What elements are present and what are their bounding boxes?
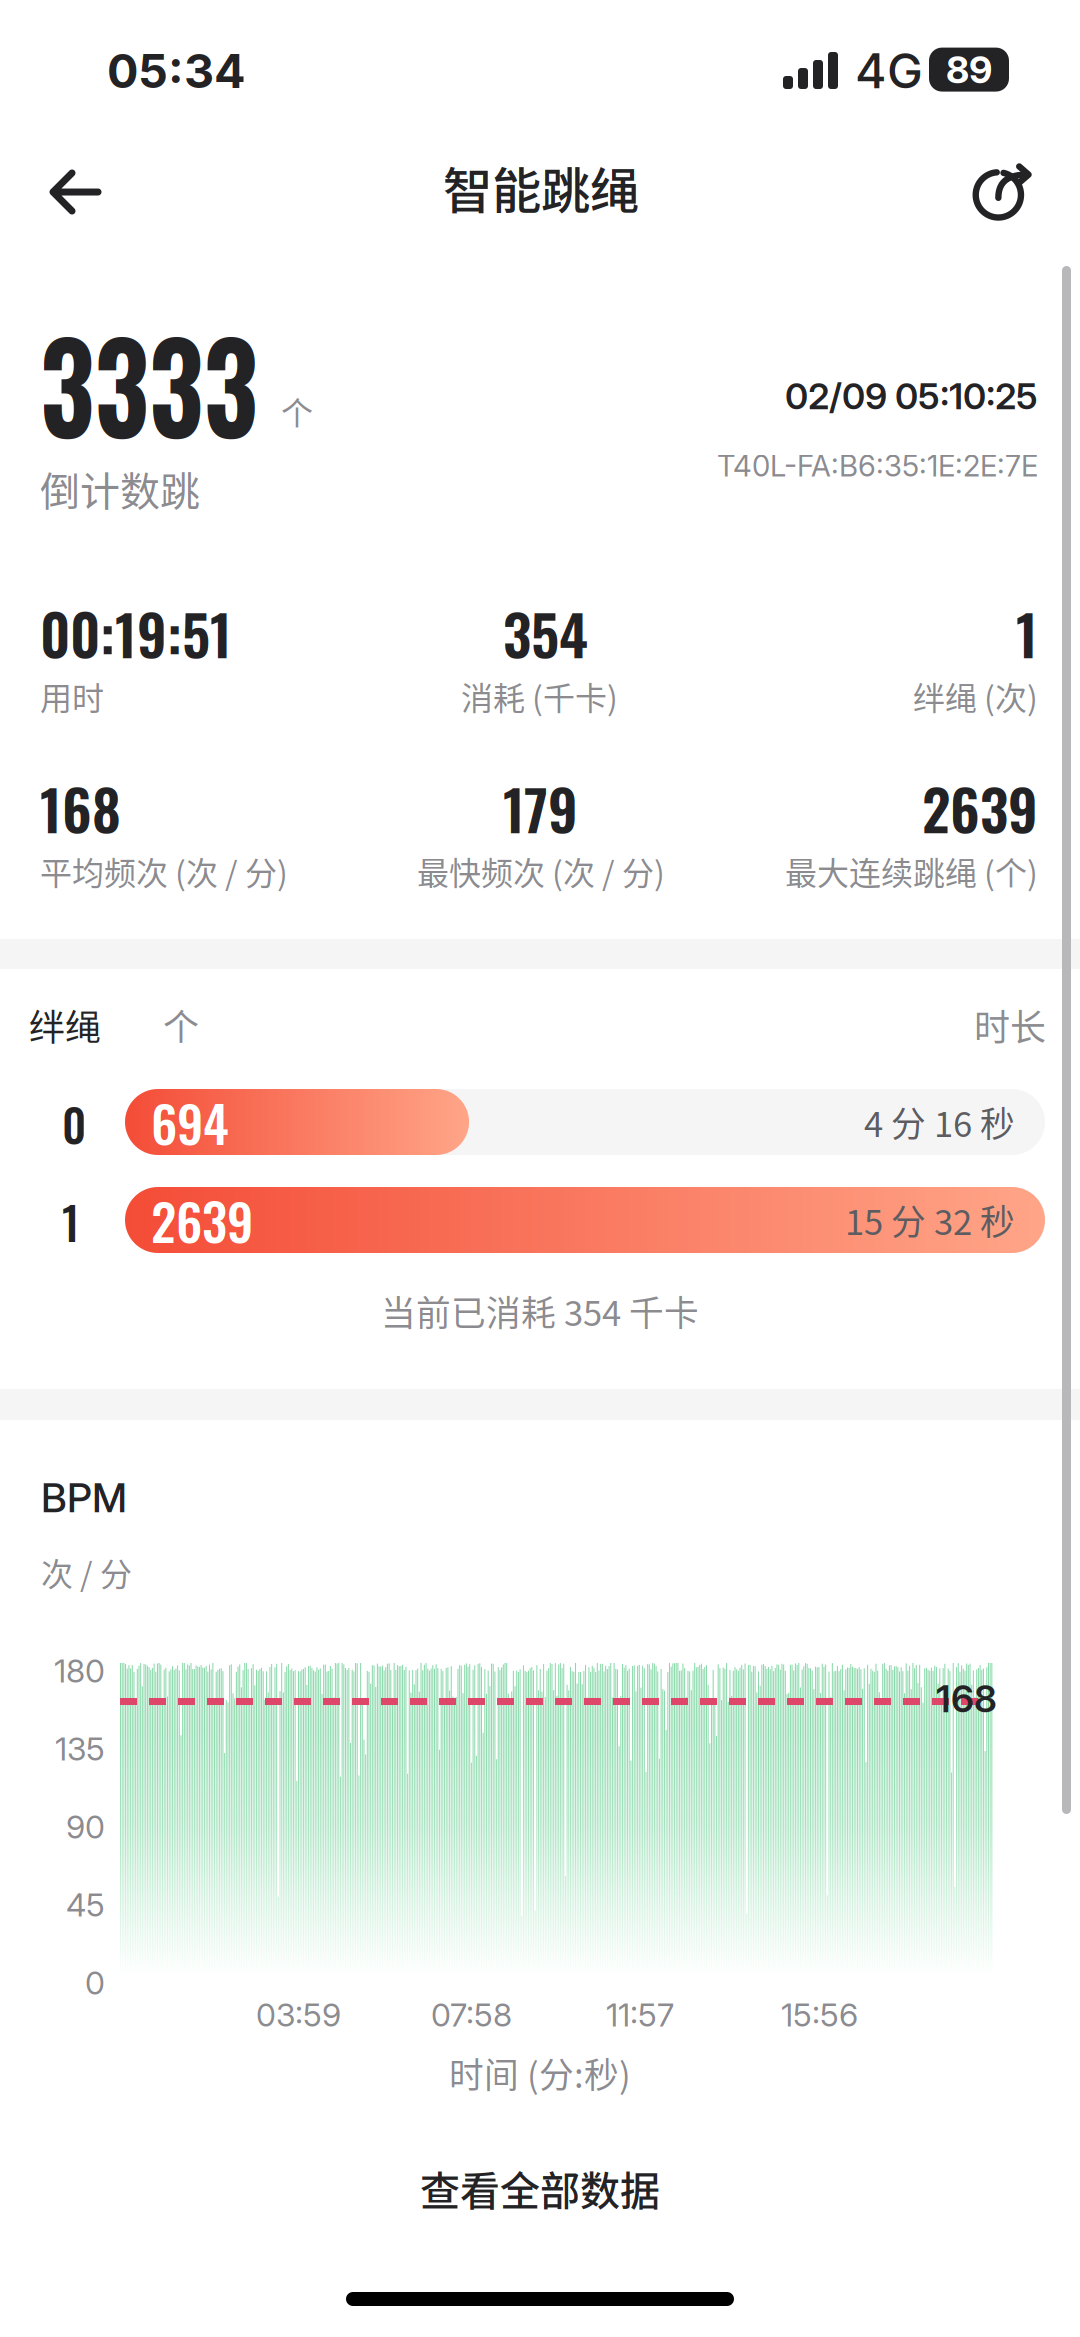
staticText: 时间 (分:秒) — [449, 2048, 631, 2098]
staticText: 绊绳 (次) — [913, 673, 1038, 719]
staticText: 180 — [54, 1652, 105, 1690]
staticText: 07:58 — [431, 1996, 512, 2034]
staticText: 智能跳绳 — [443, 152, 639, 223]
staticText: 当前已消耗 354 千卡 — [381, 1286, 699, 1336]
staticText: 354 — [503, 591, 588, 674]
staticText: 个 — [281, 388, 313, 434]
staticText: 00:19:51 — [40, 591, 232, 674]
button[interactable]: 查看全部数据 — [280, 2140, 800, 2236]
staticText: 03:59 — [256, 1996, 341, 2034]
staticText: 2639 — [151, 1182, 253, 1258]
staticText: 11:57 — [606, 1996, 674, 2034]
staticText: 168 — [936, 1676, 997, 1721]
staticText: 135 — [55, 1730, 105, 1768]
staticText: 时长 — [974, 999, 1046, 1051]
staticText: 179 — [503, 766, 578, 849]
staticText: T40L-FA:B6:35:1E:2E:7E — [717, 448, 1038, 484]
staticText: 02/09 05:10:25 — [785, 374, 1038, 418]
staticText: 个 — [163, 999, 199, 1051]
staticText: BPM — [41, 1473, 127, 1522]
staticText: 2639 — [922, 766, 1038, 849]
staticText: 最大连续跳绳 (个) — [785, 848, 1038, 894]
staticText: 1 — [62, 1188, 79, 1255]
staticText: 查看全部数据 — [420, 2159, 660, 2217]
staticText: 05:34 — [107, 43, 246, 99]
staticText: 绊绳 — [29, 999, 101, 1051]
staticText: 用时 — [40, 673, 104, 719]
staticText: 1 — [1016, 591, 1038, 674]
button[interactable]: Share — [948, 140, 1058, 244]
staticText: 0 — [85, 1964, 105, 2002]
staticText: 15:56 — [781, 1996, 858, 2034]
staticText: 4 分 16 秒 — [864, 1097, 1015, 1147]
staticText: 90 — [66, 1808, 105, 1846]
staticText: 89 — [946, 47, 992, 92]
staticText: 0 — [62, 1090, 86, 1157]
staticText: 694 — [151, 1084, 229, 1160]
staticText: 3333 — [40, 291, 292, 473]
staticText: 消耗 (千卡) — [461, 673, 618, 719]
staticText: 168 — [40, 766, 121, 849]
staticText: 倒计数跳 — [40, 459, 200, 517]
staticText: 45 — [66, 1886, 105, 1924]
staticText: 平均频次 (次 / 分) — [40, 848, 288, 894]
staticText: 次 / 分 — [41, 1549, 132, 1595]
staticText: 最快频次 (次 / 分) — [417, 848, 665, 894]
staticText: 4G — [855, 42, 923, 100]
staticText: 15 分 32 秒 — [845, 1195, 1015, 1245]
button[interactable]: Back — [20, 142, 130, 242]
